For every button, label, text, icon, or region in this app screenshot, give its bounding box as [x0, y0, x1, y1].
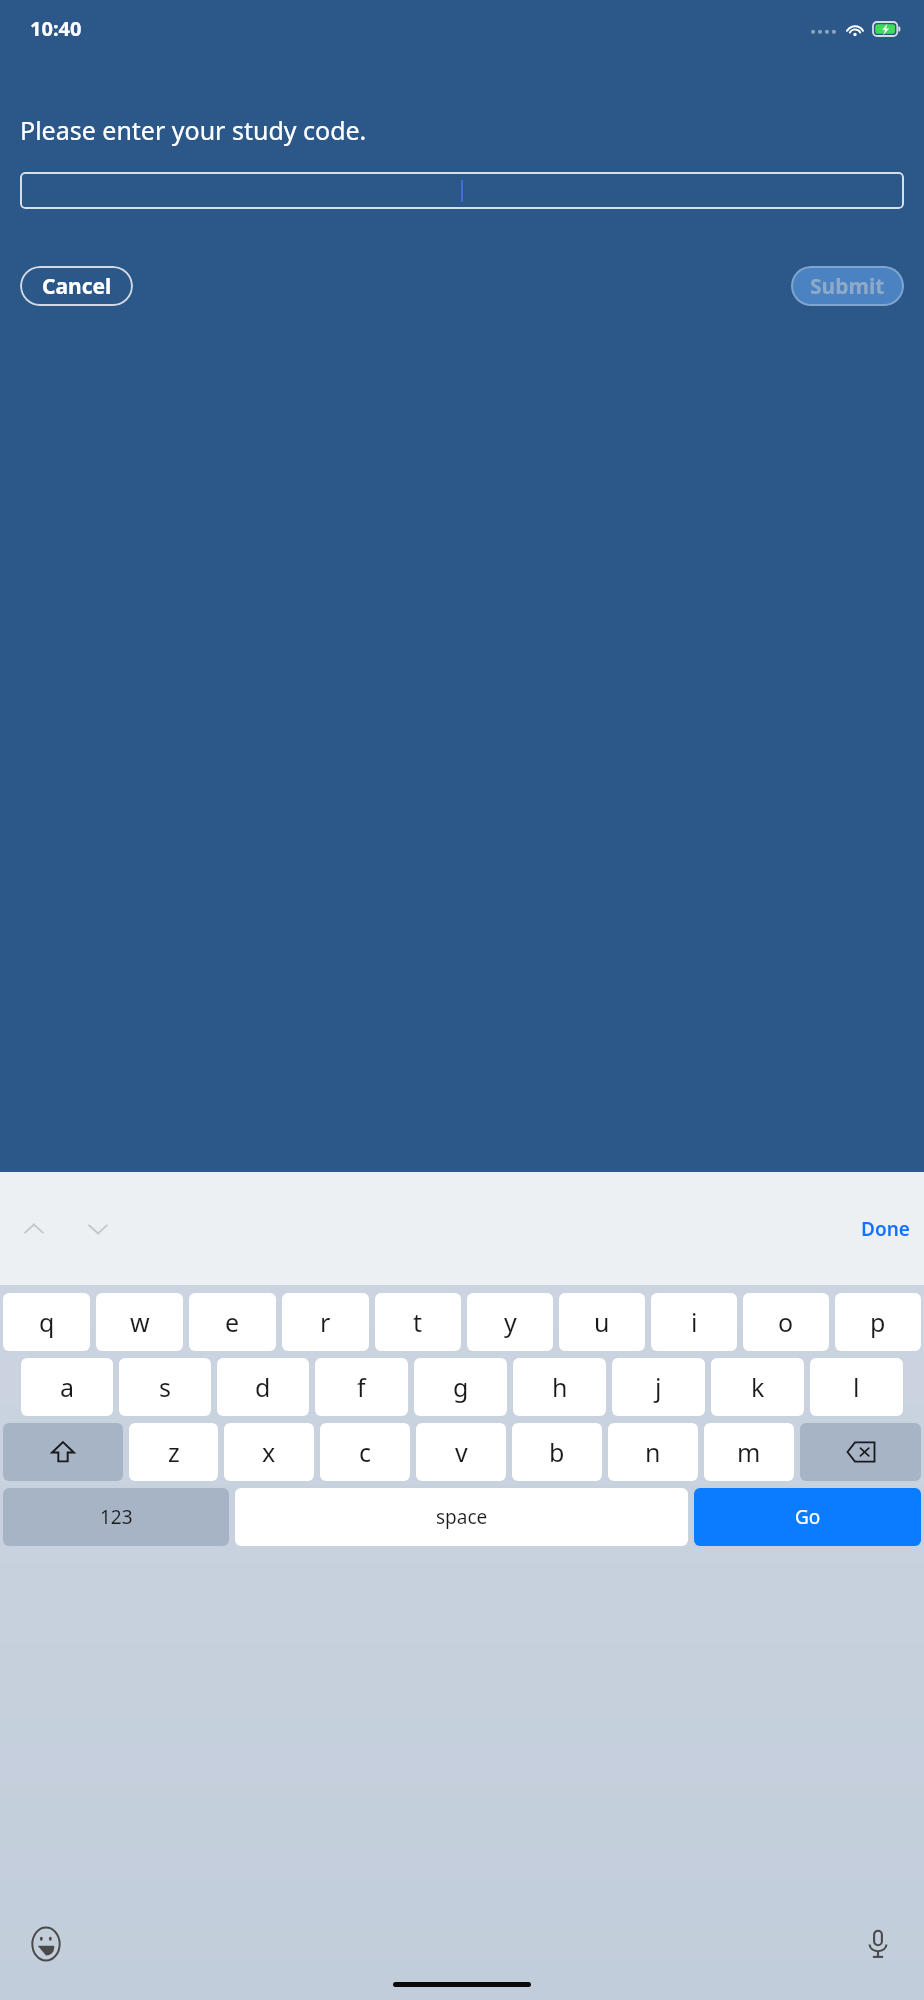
staticText: f: [357, 1370, 366, 1404]
staticText: k: [751, 1370, 765, 1404]
staticText: s: [159, 1370, 171, 1404]
staticText: d: [255, 1370, 271, 1404]
button[interactable]: a: [21, 1358, 113, 1416]
button[interactable]: u: [559, 1293, 645, 1351]
button[interactable]: Go: [694, 1488, 921, 1546]
staticText: Done: [861, 1216, 910, 1242]
staticText: p: [870, 1305, 886, 1339]
staticText: v: [455, 1435, 468, 1469]
button[interactable]: Submit: [791, 266, 904, 306]
staticText: l: [853, 1370, 860, 1404]
button[interactable]: Previous field: [12, 1207, 56, 1251]
button[interactable]: j: [612, 1358, 705, 1416]
button[interactable]: Shift: [3, 1423, 123, 1481]
button[interactable]: Dictate: [854, 1920, 902, 1968]
button[interactable]: space: [235, 1488, 688, 1546]
staticText: o: [778, 1305, 794, 1339]
staticText: Please enter your study code.: [20, 113, 367, 147]
staticText: x: [262, 1435, 276, 1469]
staticText: w: [130, 1305, 150, 1339]
button[interactable]: Done: [861, 1207, 910, 1251]
button[interactable]: n: [608, 1423, 698, 1481]
button[interactable]: z: [129, 1423, 218, 1481]
staticText: u: [594, 1305, 610, 1339]
button[interactable]: o: [743, 1293, 829, 1351]
button[interactable]: 123: [3, 1488, 229, 1546]
staticText: j: [655, 1370, 662, 1404]
button[interactable]: c: [320, 1423, 410, 1481]
button[interactable]: e: [189, 1293, 276, 1351]
button[interactable]: p: [835, 1293, 921, 1351]
staticText: a: [60, 1370, 75, 1404]
button[interactable]: y: [467, 1293, 553, 1351]
staticText: Cancel: [42, 272, 112, 301]
staticText: n: [645, 1435, 661, 1469]
button[interactable]: s: [119, 1358, 211, 1416]
button[interactable]: m: [704, 1423, 794, 1481]
button[interactable]: Backspace: [800, 1423, 921, 1481]
button[interactable]: d: [217, 1358, 309, 1416]
button[interactable]: b: [512, 1423, 602, 1481]
button[interactable]: Next field: [76, 1207, 120, 1251]
button[interactable]: i: [651, 1293, 737, 1351]
button[interactable]: w: [96, 1293, 183, 1351]
staticText: e: [225, 1305, 240, 1339]
staticText: y: [504, 1305, 517, 1339]
staticText: g: [453, 1370, 469, 1404]
button[interactable]: g: [414, 1358, 507, 1416]
button[interactable]: t: [375, 1293, 461, 1351]
button[interactable]: h: [513, 1358, 606, 1416]
staticText: Go: [795, 1504, 821, 1530]
button[interactable]: r: [282, 1293, 369, 1351]
staticText: t: [413, 1305, 423, 1339]
button[interactable]: f: [315, 1358, 408, 1416]
staticText: b: [549, 1435, 565, 1469]
button[interactable]: x: [224, 1423, 314, 1481]
staticText: h: [552, 1370, 568, 1404]
staticText: z: [168, 1435, 180, 1469]
button[interactable]: q: [3, 1293, 90, 1351]
staticText: 10:40: [30, 15, 82, 42]
staticText: 123: [100, 1504, 133, 1530]
staticText: m: [737, 1435, 761, 1469]
staticText: i: [691, 1305, 698, 1339]
staticText: space: [436, 1504, 488, 1530]
button[interactable]: Cancel: [20, 266, 133, 306]
staticText: c: [359, 1435, 372, 1469]
staticText: r: [320, 1305, 331, 1339]
button[interactable]: k: [711, 1358, 804, 1416]
button[interactable]: Emoji keyboard: [22, 1920, 70, 1968]
button[interactable]: l: [810, 1358, 903, 1416]
button[interactable]: v: [416, 1423, 506, 1481]
button[interactable]: [20, 172, 904, 209]
staticText: Submit: [810, 272, 885, 301]
staticText: q: [39, 1305, 55, 1339]
